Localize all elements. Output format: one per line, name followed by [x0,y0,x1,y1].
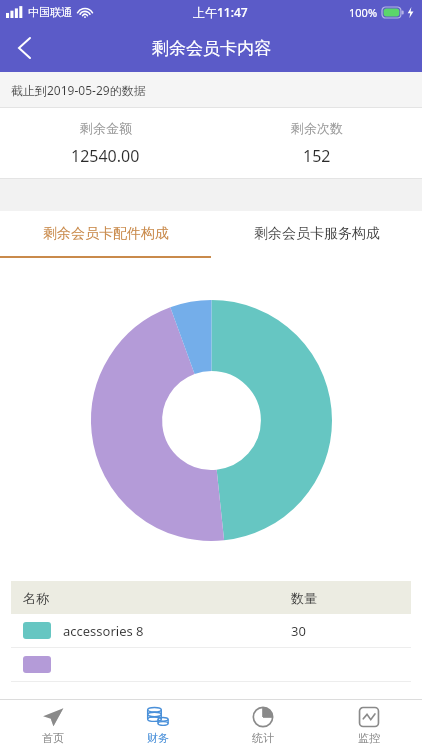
staticText: 30 [291,622,411,640]
button[interactable]: 首页 [0,700,105,750]
staticText: 数量 [291,590,411,606]
button[interactable]: 剩余会员卡服务构成 [211,211,422,256]
staticText: 统计 [252,731,274,745]
staticText: 首页 [42,731,64,745]
staticText: 中国联通 [28,5,72,19]
staticText: 名称 [23,590,291,606]
button[interactable]: Back [0,24,48,72]
staticText: 剩余会员卡服务构成 [254,225,380,243]
staticText: 监控 [358,731,380,745]
staticText: 剩余会员卡配件构成 [43,225,169,243]
staticText: 剩余金额 [80,120,132,136]
staticText: 剩余次数 [291,120,343,136]
button[interactable]: accessories 8 [11,614,411,647]
button[interactable] [11,648,411,681]
staticText: 剩余会员卡内容 [152,38,271,59]
staticText: 财务 [147,731,169,745]
staticText: 截止到2019-05-29的数据 [11,82,146,98]
staticText: 100% [349,5,378,20]
button[interactable]: 剩余会员卡配件构成 [0,211,211,256]
staticText: 152 [303,145,331,167]
button[interactable]: 财务 [105,700,210,750]
staticText: 12540.00 [71,145,140,167]
button[interactable]: 监控 [316,700,422,750]
button[interactable]: 统计 [210,700,316,750]
staticText: 上午11:47 [193,4,248,20]
staticText: accessories 8 [63,622,291,640]
